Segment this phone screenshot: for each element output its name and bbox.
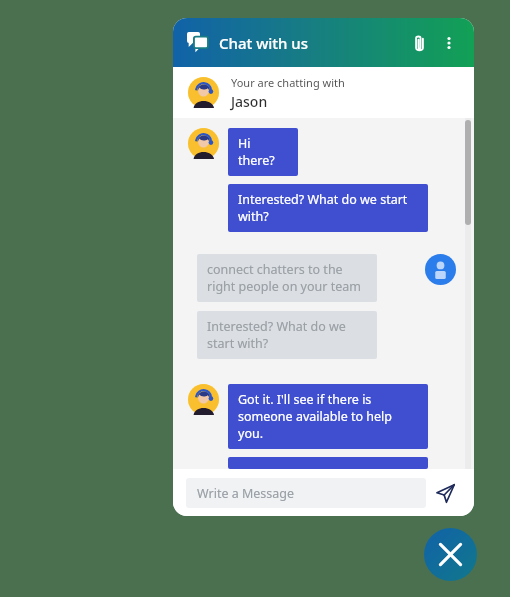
staticText: Chat with us xyxy=(219,33,309,53)
staticText: Jason xyxy=(231,92,268,111)
staticText: Interested? What do we start with? xyxy=(207,318,367,352)
staticText: Interested? What do we start with? xyxy=(238,191,418,225)
button[interactable]: Attach file xyxy=(406,30,432,56)
button[interactable]: Interested? What do we start with? xyxy=(197,311,377,359)
staticText: Your are chatting with xyxy=(231,75,345,90)
button[interactable]: Hi there? xyxy=(228,128,298,176)
button[interactable]: Write a Message xyxy=(186,478,426,508)
staticText: connect chatters to the right people on … xyxy=(207,261,367,295)
staticText: Write a Message xyxy=(197,485,295,502)
staticText: Got it. I'll see if there is someone ava… xyxy=(238,391,418,442)
button[interactable]: More options xyxy=(436,30,462,56)
button[interactable]: Close chat xyxy=(424,528,477,581)
button[interactable]: I'd love to collect some quick details xyxy=(228,457,428,469)
button[interactable]: Send message xyxy=(426,474,464,512)
button[interactable]: Interested? What do we start with? xyxy=(228,184,428,232)
staticText: Hi there? xyxy=(238,135,288,169)
button[interactable]: connect chatters to the right people on … xyxy=(197,254,377,302)
button[interactable]: Bot agent xyxy=(425,254,456,285)
button[interactable]: Got it. I'll see if there is someone ava… xyxy=(228,384,428,449)
